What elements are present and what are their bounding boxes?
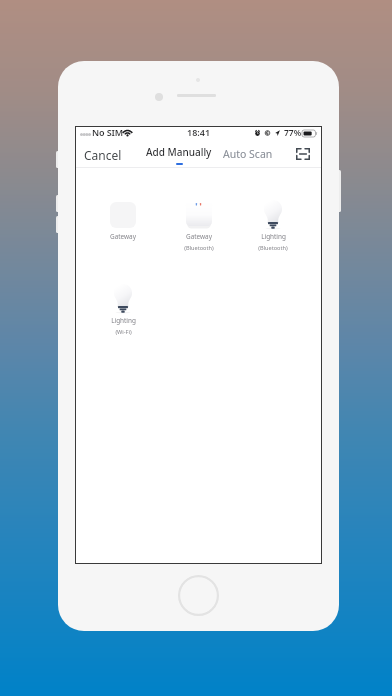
staticText: Lighting [261, 232, 286, 241]
button[interactable]: Cancel [78, 143, 128, 167]
staticText: (Bluetooth) [258, 244, 288, 252]
staticText: 77% [284, 127, 302, 139]
staticText: Gateway [110, 232, 136, 241]
button[interactable]: Auto Scan [218, 143, 278, 165]
staticText: Lighting [111, 316, 136, 325]
button[interactable]: Add Manually [142, 142, 216, 168]
staticText: Gateway [186, 232, 212, 241]
staticText: (Bluetooth) [184, 244, 214, 252]
staticText: Cancel [84, 147, 122, 163]
button[interactable]: Gateway [162, 200, 236, 256]
staticText: (Wi-Fi) [115, 328, 132, 336]
button[interactable]: Gateway [86, 200, 160, 256]
staticText: Auto Scan [223, 147, 273, 161]
staticText: No SIM [92, 126, 124, 138]
button[interactable]: Lighting [86, 284, 160, 340]
other: Home [178, 575, 219, 616]
button[interactable]: Lighting [236, 200, 310, 256]
staticText: Add Manually [146, 145, 212, 159]
button[interactable]: Scan QR code [292, 144, 314, 164]
staticText: 18:41 [187, 126, 211, 138]
